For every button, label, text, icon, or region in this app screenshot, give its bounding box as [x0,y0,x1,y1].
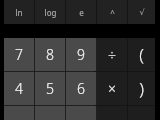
staticText: 5 [46,79,54,98]
button[interactable]: ÷ [97,38,127,71]
button[interactable]: log [35,0,65,24]
staticText: 9 [77,45,85,64]
button[interactable]: ( [128,38,155,71]
button[interactable]: ln [4,0,34,24]
button[interactable]: 5 [35,72,65,105]
staticText: log [44,7,57,18]
button[interactable]: 4 [4,72,34,105]
staticText: ÷ [108,45,116,64]
staticText: 6 [77,79,85,98]
button[interactable]: × [97,72,127,105]
button[interactable]: e [66,0,96,24]
staticText: 8 [46,45,54,64]
staticText: e [79,7,84,18]
button[interactable]: ) [128,72,155,105]
staticText: × [108,79,116,98]
staticText: ) [139,77,144,100]
staticText: ln [15,7,23,18]
staticText: ^ [110,7,115,18]
button[interactable]: 9 [66,38,96,71]
staticText: 4 [15,79,23,98]
button[interactable]: 7 [4,38,34,71]
staticText: 7 [15,45,23,64]
button[interactable]: 6 [66,72,96,105]
button[interactable]: 8 [35,38,65,71]
button[interactable]: √ [128,0,155,24]
staticText: √ [139,8,145,17]
staticText: ( [139,43,144,66]
button[interactable]: ^ [97,0,127,24]
